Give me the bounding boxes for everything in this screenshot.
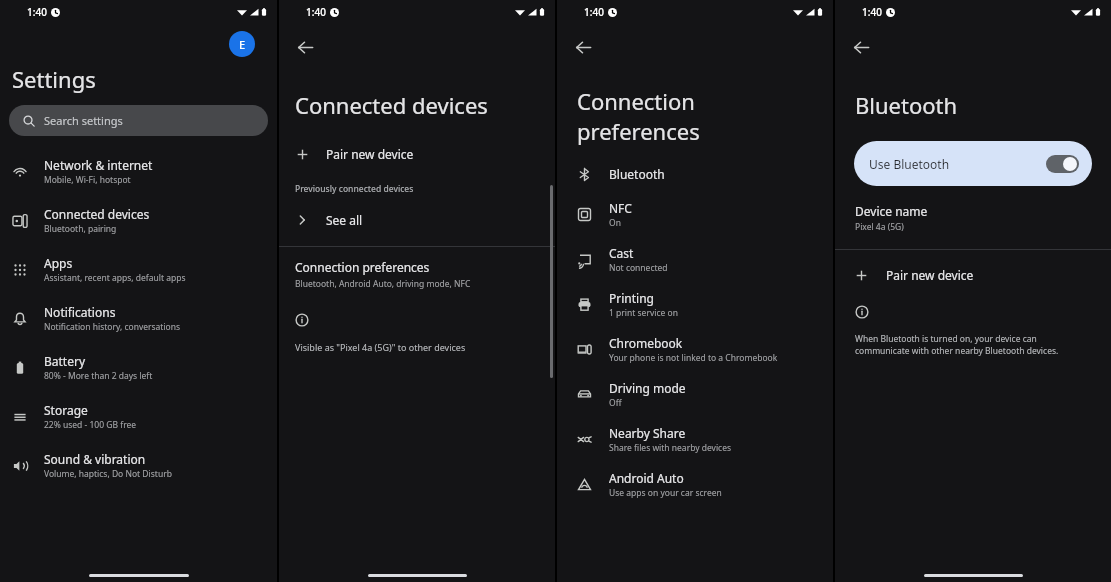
staticText: Device name: [855, 203, 928, 219]
button[interactable]: Nearby Share: [557, 417, 833, 462]
staticText: Printing: [609, 290, 654, 306]
staticText: preferences: [577, 116, 700, 146]
button[interactable]: Back: [566, 30, 600, 64]
button[interactable]: Printing: [557, 282, 833, 327]
staticText: Apps: [44, 255, 73, 271]
staticText: Your phone is not linked to a Chromebook: [609, 352, 778, 364]
staticText: Pair new device: [326, 146, 414, 162]
staticText: Cast: [609, 245, 634, 261]
button[interactable]: See all: [279, 205, 555, 235]
button[interactable]: Bluetooth: [557, 156, 833, 192]
button[interactable]: Cast: [557, 237, 833, 282]
staticText: Bluetooth, pairing: [44, 223, 117, 235]
staticText: 22% used - 100 GB free: [44, 419, 137, 431]
staticText: E: [239, 37, 246, 52]
staticText: Connected devices: [295, 90, 488, 120]
staticText: Network & internet: [44, 157, 153, 173]
button[interactable]: Device name: [835, 201, 1111, 235]
button[interactable]: Storage: [0, 392, 277, 441]
staticText: Not connected: [609, 262, 668, 274]
button[interactable]: Network & internet: [0, 147, 277, 196]
staticText: Visible as "Pixel 4a (5G)" to other devi…: [295, 341, 466, 353]
staticText: Bluetooth, Android Auto, driving mode, N…: [295, 278, 471, 290]
staticText: On: [609, 217, 621, 229]
staticText: 80% - More than 2 days left: [44, 370, 153, 382]
staticText: When Bluetooth is turned on, your device…: [855, 333, 1037, 345]
button[interactable]: Chromebook: [557, 327, 833, 372]
staticText: Bluetooth: [609, 166, 665, 182]
staticText: Driving mode: [609, 380, 686, 396]
staticText: 1:40: [584, 5, 604, 19]
staticText: communicate with other nearby Bluetooth …: [855, 345, 1059, 357]
staticText: 1 print service on: [609, 307, 678, 319]
staticText: Off: [609, 397, 622, 409]
staticText: Previously connected devices: [295, 183, 414, 195]
button[interactable]: Notifications: [0, 294, 277, 343]
button[interactable]: Connected devices: [0, 196, 277, 245]
staticText: Connection: [577, 86, 695, 116]
staticText: Pixel 4a (5G): [855, 221, 904, 233]
button[interactable]: Sound & vibration: [0, 441, 277, 490]
button[interactable]: Driving mode: [557, 372, 833, 417]
staticText: Chromebook: [609, 335, 683, 351]
staticText: NFC: [609, 200, 632, 216]
staticText: Use apps on your car screen: [609, 487, 722, 499]
button[interactable]: Search settings: [9, 105, 268, 136]
button[interactable]: Back: [844, 30, 878, 64]
staticText: See all: [326, 212, 363, 228]
staticText: Storage: [44, 402, 88, 418]
button[interactable]: Pair new device: [279, 138, 555, 170]
button[interactable]: Apps: [0, 245, 277, 294]
button[interactable]: Use Bluetooth toggle: [1046, 155, 1079, 173]
button[interactable]: Pair new device: [835, 261, 1111, 289]
staticText: Android Auto: [609, 470, 684, 486]
staticText: 1:40: [27, 5, 47, 19]
staticText: Sound & vibration: [44, 451, 146, 467]
staticText: Notifications: [44, 304, 116, 320]
button[interactable]: NFC: [557, 192, 833, 237]
staticText: Notification history, conversations: [44, 321, 181, 333]
button[interactable]: Use Bluetooth: [854, 141, 1092, 186]
staticText: Settings: [12, 64, 96, 94]
staticText: Connected devices: [44, 206, 150, 222]
staticText: Bluetooth: [855, 90, 958, 120]
staticText: Assistant, recent apps, default apps: [44, 272, 186, 284]
staticText: 1:40: [306, 5, 326, 19]
button[interactable]: Connection preferences: [279, 257, 555, 292]
staticText: Connection preferences: [295, 259, 430, 275]
button[interactable]: Account: [229, 31, 255, 57]
staticText: Search settings: [44, 113, 123, 128]
staticText: Mobile, Wi-Fi, hotspot: [44, 174, 131, 186]
button[interactable]: Android Auto: [557, 462, 833, 507]
staticText: Share files with nearby devices: [609, 442, 732, 454]
button[interactable]: Battery: [0, 343, 277, 392]
button[interactable]: Back: [288, 30, 322, 64]
staticText: Pair new device: [886, 267, 974, 283]
staticText: Use Bluetooth: [869, 156, 950, 172]
staticText: Volume, haptics, Do Not Disturb: [44, 468, 172, 480]
staticText: Battery: [44, 353, 86, 369]
staticText: 1:40: [862, 5, 882, 19]
staticText: Nearby Share: [609, 425, 686, 441]
